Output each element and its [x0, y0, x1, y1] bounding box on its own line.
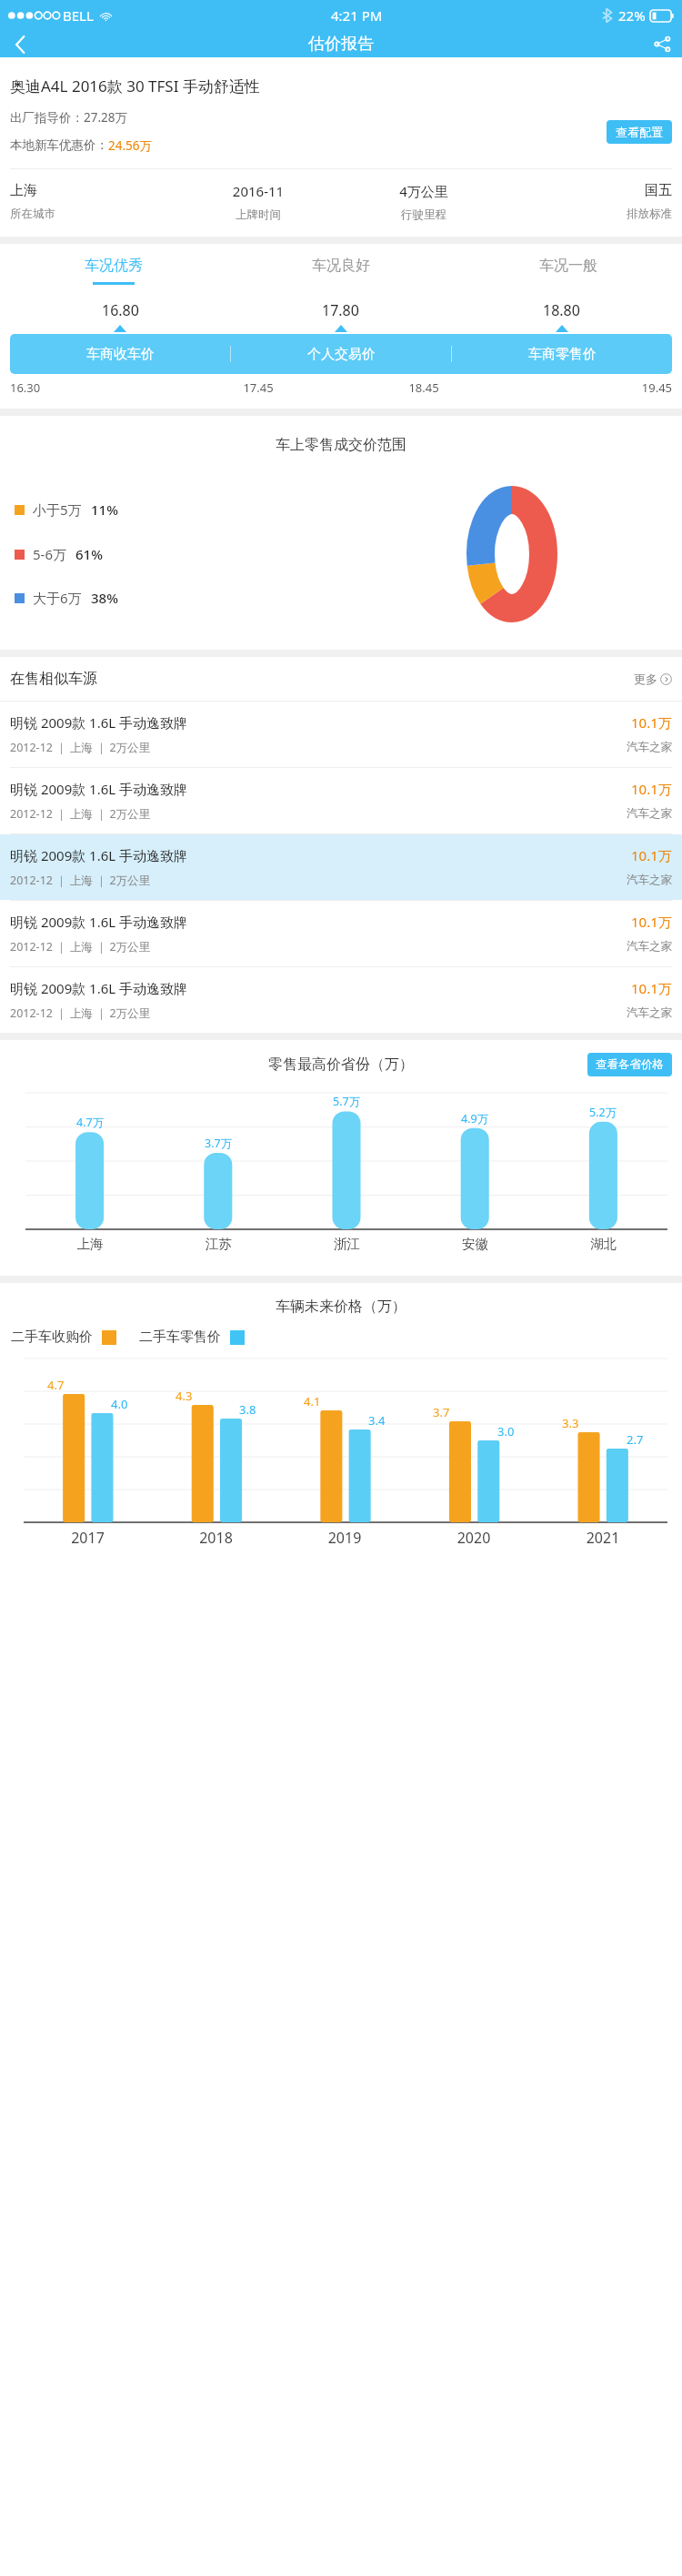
staticText: 18.80	[543, 300, 580, 320]
staticText: 2.7	[627, 1431, 644, 1448]
staticText: 3.7万	[205, 1136, 233, 1151]
staticText: 2019	[280, 1528, 409, 1548]
staticText: 车况一般	[539, 257, 597, 275]
staticText: 车况良好	[312, 257, 370, 275]
staticText: 3.3	[562, 1415, 579, 1431]
button[interactable]: 个人交易价	[231, 334, 451, 374]
staticText: 所在城市	[10, 207, 176, 221]
staticText: 17.45	[176, 379, 341, 396]
staticText: 车况优秀	[85, 257, 143, 275]
staticText: 查看各省价格	[596, 1057, 664, 1072]
staticText: 4万公里	[341, 182, 506, 200]
staticText: 19.45	[506, 379, 672, 396]
staticText: 2012-12 ｜ 上海 ｜ 2万公里	[10, 806, 151, 822]
staticText: 安徽	[411, 1236, 539, 1252]
staticText: 更多	[634, 672, 657, 686]
staticText: 38%	[91, 589, 118, 607]
staticText: 汽车之家	[627, 806, 672, 821]
staticText: 2012-12 ｜ 上海 ｜ 2万公里	[10, 1005, 151, 1021]
staticText: 汽车之家	[627, 873, 672, 887]
staticText: 湖北	[539, 1236, 667, 1252]
staticText: 4.9万	[461, 1111, 489, 1126]
staticText: 汽车之家	[627, 939, 672, 954]
staticText: 16.30	[10, 379, 176, 396]
staticText: 明锐 2009款 1.6L 手动逸致牌	[10, 780, 188, 798]
staticText: 明锐 2009款 1.6L 手动逸致牌	[10, 846, 188, 864]
staticText: 22%	[618, 6, 646, 25]
staticText: 4:21 PM	[331, 6, 383, 25]
staticText: 10.1万	[631, 846, 672, 864]
button[interactable]: 车商零售价	[452, 334, 672, 374]
staticText: 3.8	[239, 1401, 256, 1418]
button[interactable]: Share	[642, 31, 682, 57]
staticText: 4.0	[111, 1396, 128, 1412]
staticText: 本地新车优惠价：	[10, 137, 108, 153]
button[interactable]: 明锐 2009款 1.6L 手动逸致牌	[0, 834, 682, 900]
staticText: 2012-12 ｜ 上海 ｜ 2万公里	[10, 939, 151, 955]
staticText: 5.7万	[333, 1094, 361, 1109]
staticText: 2017	[24, 1528, 152, 1548]
button[interactable]: 查看各省价格	[587, 1053, 672, 1076]
staticText: 汽车之家	[627, 1005, 672, 1020]
staticText: 车上零售成交价范围	[0, 436, 682, 454]
staticText: 浙江	[283, 1236, 411, 1252]
staticText: BELL	[63, 6, 94, 25]
staticText: 车商零售价	[528, 346, 597, 363]
staticText: 二手车零售价	[139, 1328, 221, 1346]
staticText: 4.7万	[76, 1115, 105, 1130]
button[interactable]: 车况一般	[455, 244, 682, 289]
staticText: 4.3	[176, 1388, 193, 1404]
button[interactable]: 明锐 2009款 1.6L 手动逸致牌	[0, 702, 682, 767]
staticText: 大于6万	[33, 589, 82, 607]
staticText: 估价报告	[308, 34, 374, 55]
staticText: 2016-11	[176, 182, 341, 200]
staticText: 5-6万	[33, 545, 66, 563]
staticText: 明锐 2009款 1.6L 手动逸致牌	[10, 979, 188, 997]
staticText: 车商收车价	[86, 346, 155, 363]
staticText: 3.4	[368, 1412, 386, 1429]
staticText: 2020	[409, 1528, 538, 1548]
button[interactable]: 车况优秀	[0, 244, 227, 289]
staticText: 16.80	[102, 300, 139, 320]
staticText: 上牌时间	[176, 207, 341, 222]
staticText: 国五	[506, 182, 672, 199]
button[interactable]: 明锐 2009款 1.6L 手动逸致牌	[0, 768, 682, 833]
staticText: 10.1万	[631, 780, 672, 798]
staticText: 排放标准	[506, 207, 672, 221]
staticText: 在售相似车源	[10, 670, 634, 688]
staticText: 查看配置	[616, 125, 663, 139]
staticText: 小于5万	[33, 500, 82, 519]
staticText: 2012-12 ｜ 上海 ｜ 2万公里	[10, 873, 151, 888]
staticText: 17.80	[322, 300, 359, 320]
staticText: 2012-12 ｜ 上海 ｜ 2万公里	[10, 740, 151, 755]
button[interactable]: 车商收车价	[10, 334, 230, 374]
staticText: 5.2万	[589, 1105, 617, 1120]
button[interactable]: 查看配置	[607, 120, 672, 144]
staticText: 零售最高价省份（万）	[268, 1056, 414, 1074]
staticText: 11%	[91, 500, 118, 519]
button[interactable]: Back	[0, 31, 40, 57]
staticText: 10.1万	[631, 713, 672, 732]
staticText: 4.7	[47, 1377, 65, 1393]
staticText: 24.56万	[108, 137, 153, 154]
staticText: 2021	[538, 1528, 667, 1548]
staticText: 车辆未来价格（万）	[0, 1298, 682, 1316]
staticText: 出厂指导价：27.28万	[10, 109, 128, 126]
staticText: 上海	[10, 182, 176, 199]
staticText: 18.45	[341, 379, 506, 396]
staticText: 3.0	[497, 1423, 515, 1440]
button[interactable]: 明锐 2009款 1.6L 手动逸致牌	[0, 967, 682, 1033]
button[interactable]: 更多	[634, 672, 672, 686]
staticText: 10.1万	[631, 913, 672, 931]
staticText: 上海	[25, 1236, 155, 1252]
staticText: 个人交易价	[307, 346, 376, 363]
button[interactable]: 车况良好	[227, 244, 455, 289]
staticText: 4.1	[304, 1393, 321, 1409]
staticText: 2018	[152, 1528, 280, 1548]
staticText: 江苏	[155, 1236, 283, 1252]
staticText: 明锐 2009款 1.6L 手动逸致牌	[10, 713, 188, 732]
button[interactable]: 明锐 2009款 1.6L 手动逸致牌	[0, 901, 682, 966]
staticText: 行驶里程	[341, 207, 506, 222]
staticText: 3.7	[433, 1404, 450, 1420]
staticText: 10.1万	[631, 979, 672, 997]
